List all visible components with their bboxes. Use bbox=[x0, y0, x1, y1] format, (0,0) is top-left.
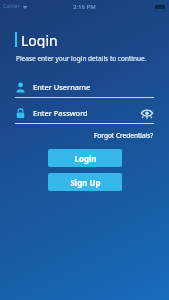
staticText: Login bbox=[74, 153, 97, 164]
staticText: Please enter your login details to conti… bbox=[16, 54, 147, 63]
button[interactable]: Show password bbox=[139, 106, 154, 120]
staticText: 2:16 PM bbox=[73, 3, 96, 11]
staticText: Carrier bbox=[3, 3, 20, 10]
button[interactable]: Login bbox=[48, 149, 122, 167]
staticText: Login bbox=[21, 31, 58, 48]
staticText: Forgot Credentials? bbox=[94, 131, 154, 140]
button[interactable]: Enter Password bbox=[15, 105, 139, 121]
button[interactable]: Sign Up bbox=[48, 173, 122, 191]
staticText: Sign Up bbox=[70, 177, 101, 188]
staticText: Enter Password bbox=[33, 108, 88, 118]
staticText: Enter Username bbox=[33, 82, 91, 92]
button[interactable]: Forgot Credentials? bbox=[92, 129, 156, 142]
button[interactable]: Enter Username bbox=[15, 79, 154, 98]
